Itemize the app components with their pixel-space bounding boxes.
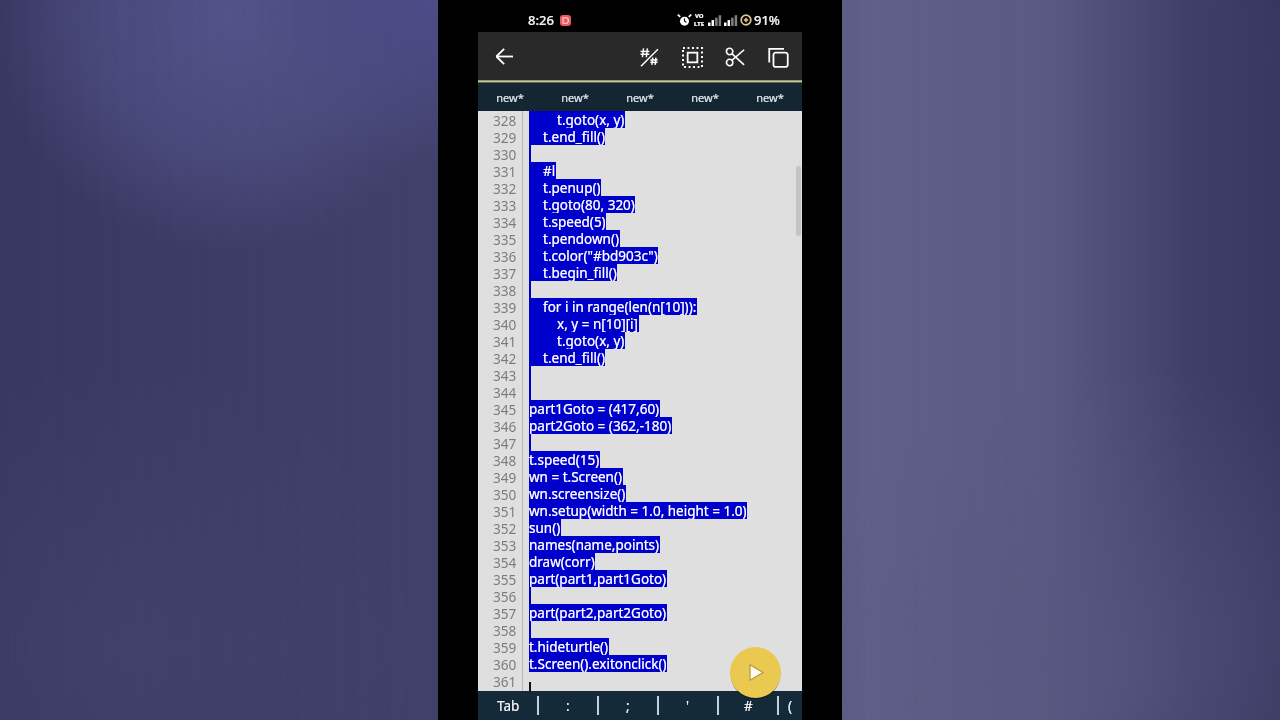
button[interactable]: # xyxy=(719,691,777,720)
staticText: t.goto(80, 320) xyxy=(529,196,635,213)
staticText: # xyxy=(744,697,753,715)
staticText: new* xyxy=(626,90,654,105)
staticText: 346 xyxy=(493,417,517,434)
staticText: t.goto(x, y) xyxy=(529,332,625,349)
staticText: ( xyxy=(788,697,793,715)
staticText: t.hideturtle() xyxy=(529,638,609,655)
staticText: 8:26 xyxy=(528,11,554,29)
staticText: new* xyxy=(561,90,589,105)
staticText: 356 xyxy=(493,587,517,604)
staticText: 345 xyxy=(493,400,517,417)
staticText: 357 xyxy=(493,604,517,621)
staticText: 347 xyxy=(493,434,517,451)
staticText: t.Screen().exitonclick() xyxy=(529,655,667,672)
staticText: 352 xyxy=(493,519,517,536)
staticText: wn.screensize() xyxy=(529,485,626,502)
staticText: part2Goto = (362,-180) xyxy=(529,417,672,434)
staticText: new* xyxy=(496,90,524,105)
staticText: t.goto(x, y) xyxy=(529,111,625,128)
staticText: t.pendown() xyxy=(529,230,620,247)
staticText: : xyxy=(566,697,570,715)
staticText: new* xyxy=(756,90,784,105)
staticText: 342 xyxy=(493,349,517,366)
staticText: 361 xyxy=(493,672,517,689)
staticText: 349 xyxy=(493,468,517,485)
staticText: t.penup() xyxy=(529,179,601,196)
staticText: part(part2,part2Goto) xyxy=(529,604,667,621)
button[interactable]: new* xyxy=(478,83,542,111)
button[interactable]: Cut xyxy=(714,32,757,80)
staticText: ; xyxy=(626,697,630,715)
staticText: 331 xyxy=(493,162,517,179)
button[interactable]: Select all xyxy=(671,32,714,80)
staticText: 340 xyxy=(493,315,517,332)
staticText: wn = t.Screen() xyxy=(529,468,623,485)
staticText: 341 xyxy=(493,332,517,349)
staticText: 348 xyxy=(493,451,517,468)
staticText: 344 xyxy=(493,383,517,400)
staticText: 337 xyxy=(493,264,517,281)
button[interactable]: new* xyxy=(607,83,672,111)
button[interactable]: new* xyxy=(737,83,802,111)
staticText: t.end_fill() xyxy=(529,128,605,145)
staticText: new* xyxy=(691,90,719,105)
button[interactable]: new* xyxy=(672,83,737,111)
staticText: LTE xyxy=(694,20,705,28)
staticText: 351 xyxy=(493,502,517,519)
staticText: 360 xyxy=(493,655,517,672)
button[interactable]: : xyxy=(539,691,597,720)
staticText: VO xyxy=(695,12,704,20)
staticText: for i in range(len(n[10])): xyxy=(529,298,697,315)
staticText: part1Goto = (417,60) xyxy=(529,400,660,417)
button[interactable]: Copy xyxy=(757,32,800,80)
staticText: 334 xyxy=(493,213,517,230)
staticText: 330 xyxy=(493,145,517,162)
staticText: 350 xyxy=(493,485,517,502)
button[interactable]: ( xyxy=(779,691,802,720)
staticText: names(name,points) xyxy=(529,536,660,553)
staticText: sun() xyxy=(529,519,561,536)
button[interactable]: ' xyxy=(659,691,717,720)
staticText: t.end_fill() xyxy=(529,349,605,366)
staticText: 355 xyxy=(493,570,517,587)
staticText: 332 xyxy=(493,179,517,196)
staticText: t.color("#bd903c") xyxy=(529,247,658,264)
staticText: 343 xyxy=(493,366,517,383)
staticText: 339 xyxy=(493,298,517,315)
staticText: 328 xyxy=(493,111,517,128)
staticText: ' xyxy=(686,697,690,715)
staticText: wn.setup(width = 1.0, height = 1.0) xyxy=(529,502,747,519)
button[interactable]: new* xyxy=(542,83,607,111)
staticText: t.begin_fill() xyxy=(529,264,617,281)
button[interactable]: Back xyxy=(482,34,526,78)
staticText: #l xyxy=(529,162,556,179)
staticText: 354 xyxy=(493,553,517,570)
staticText: t.speed(15) xyxy=(529,451,600,468)
staticText: 338 xyxy=(493,281,517,298)
staticText: 335 xyxy=(493,230,517,247)
staticText: t.speed(5) xyxy=(529,213,606,230)
staticText: 91% xyxy=(754,11,780,29)
staticText: 359 xyxy=(493,638,517,655)
button[interactable]: ; xyxy=(599,691,657,720)
staticText: Tab xyxy=(497,697,520,715)
staticText: 353 xyxy=(493,536,517,553)
staticText: x, y = n[10][i] xyxy=(529,315,639,332)
button[interactable]: Run xyxy=(730,647,781,698)
staticText: 358 xyxy=(493,621,517,638)
staticText: 333 xyxy=(493,196,517,213)
button[interactable]: Tab xyxy=(479,691,537,720)
staticText: 329 xyxy=(493,128,517,145)
staticText: 336 xyxy=(493,247,517,264)
staticText: draw(corr) xyxy=(529,553,595,570)
button[interactable]: Toggle comment xyxy=(628,32,671,80)
staticText: part(part1,part1Goto) xyxy=(529,570,667,587)
